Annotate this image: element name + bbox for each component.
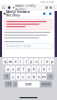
button[interactable]: v (26, 73, 31, 80)
staticText: z (12, 74, 14, 79)
button[interactable]: c (21, 73, 25, 80)
staticText: e (14, 58, 16, 64)
staticText: a (7, 66, 9, 71)
button[interactable]: Back (2, 6, 6, 10)
button[interactable]: 123 (5, 81, 12, 87)
staticText: t (25, 58, 26, 64)
button[interactable]: h (31, 66, 36, 72)
button[interactable]: Account (49, 12, 51, 15)
staticText: i (41, 58, 42, 64)
button[interactable]: r (18, 58, 23, 64)
button[interactable]: s (11, 66, 15, 72)
staticText: b (33, 74, 35, 79)
button[interactable]: ✕ (47, 73, 54, 80)
button[interactable]: return (40, 81, 52, 87)
staticText: j (38, 66, 39, 71)
staticText: r (20, 58, 22, 64)
button[interactable]: m (42, 73, 46, 80)
button[interactable]: f (21, 66, 25, 72)
staticText: w (9, 58, 12, 64)
button[interactable]: i (39, 58, 44, 64)
button[interactable]: u (34, 58, 38, 64)
staticText: Mobile browsers: Not Okay (6, 10, 30, 17)
staticText: y (30, 58, 32, 64)
button[interactable]: Tabs (49, 6, 52, 9)
staticText: q (4, 58, 6, 64)
staticText: n (38, 74, 40, 79)
staticText: v (27, 74, 29, 79)
button[interactable]: ○ (13, 81, 17, 87)
staticText: s (12, 66, 14, 71)
button[interactable]: e (13, 58, 18, 64)
button[interactable]: o (44, 58, 49, 64)
button[interactable]: d (16, 66, 20, 72)
staticText: Try Another Search (6, 44, 31, 48)
staticText: k (43, 66, 45, 71)
button[interactable]: g (26, 66, 31, 72)
button[interactable]: example.com/try-another (13, 4, 36, 11)
button[interactable]: a (5, 66, 10, 72)
staticText: space (25, 82, 32, 86)
staticText: u (35, 58, 37, 64)
staticText: m (42, 74, 46, 79)
staticText: x (17, 74, 19, 79)
staticText: h (33, 66, 35, 71)
button[interactable]: space (18, 81, 39, 87)
button[interactable]: Share (45, 6, 48, 9)
button[interactable]: ↑ (3, 73, 10, 80)
button[interactable]: Try Another Search (4, 44, 52, 49)
button[interactable]: Info (43, 12, 45, 15)
button[interactable]: n (37, 73, 41, 80)
button[interactable]: Reload (7, 6, 11, 10)
staticText: g (27, 66, 29, 71)
button[interactable]: z (11, 73, 15, 80)
button[interactable]: t (24, 58, 28, 64)
button[interactable]: q (3, 58, 7, 64)
staticText: ↑ (5, 74, 8, 79)
staticText: c (22, 74, 24, 79)
staticText: d (17, 66, 19, 71)
staticText: f (23, 66, 24, 71)
button[interactable]: k (42, 66, 46, 72)
staticText: 123 (5, 82, 11, 86)
button[interactable]: x (16, 73, 20, 80)
button[interactable]: j (37, 66, 41, 72)
button[interactable]: l (47, 66, 51, 72)
staticText: o (46, 58, 48, 64)
staticText: l (49, 66, 50, 71)
staticText: ○ (14, 83, 16, 86)
staticText: p (51, 58, 53, 64)
staticText: example.com/try-another (15, 4, 36, 11)
button[interactable]: y (29, 58, 33, 64)
button[interactable]: w (8, 58, 12, 64)
staticText: return (42, 82, 51, 86)
staticText: ✕ (49, 75, 51, 78)
button[interactable]: b (31, 73, 36, 80)
button[interactable]: p (50, 58, 54, 64)
